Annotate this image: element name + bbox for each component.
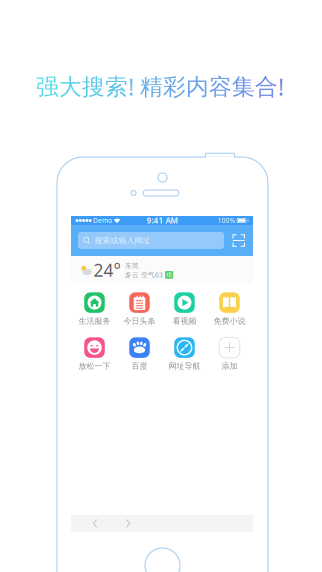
button[interactable]: 百度 — [117, 335, 162, 373]
staticText: 24° — [93, 258, 120, 281]
staticText: 集 — [232, 73, 255, 101]
staticText: ! — [128, 72, 134, 102]
staticText: 内 — [186, 73, 209, 101]
staticText: 生活服务 — [78, 316, 110, 326]
staticText: 东莞 — [125, 262, 139, 270]
staticText: 百度 — [131, 361, 147, 371]
staticText: 添加 — [221, 361, 237, 371]
staticText: Demo — [93, 216, 112, 225]
staticText: ! — [278, 72, 284, 102]
button[interactable]: Back — [79, 515, 112, 531]
button[interactable]: 今日头条 — [117, 290, 162, 328]
button[interactable]: 放松一下 — [72, 335, 117, 373]
staticText: 容 — [209, 73, 232, 101]
button[interactable]: 免费小说 — [207, 290, 252, 328]
staticText: 多云 空气63 — [125, 270, 163, 279]
button[interactable]: 24° — [71, 256, 253, 284]
button[interactable]: 搜索或输入网址 — [78, 232, 224, 249]
staticText: 强 — [36, 73, 59, 101]
staticText: 彩 — [163, 73, 186, 101]
staticText: 索 — [105, 73, 128, 101]
button[interactable]: 添加 — [207, 335, 252, 373]
button[interactable]: 生活服务 — [72, 290, 117, 328]
button[interactable]: Forward — [112, 515, 145, 531]
staticText: 今日头条 — [123, 316, 155, 326]
staticText: 大 — [59, 73, 82, 101]
staticText: 合 — [255, 73, 278, 101]
staticText: 搜索或输入网址 — [94, 236, 150, 245]
staticText: 精 — [140, 73, 163, 101]
staticText: 优 — [167, 272, 172, 278]
staticText: 搜 — [82, 73, 105, 101]
staticText: 免费小说 — [213, 316, 245, 326]
button[interactable]: 看视频 — [162, 290, 207, 328]
staticText: 网址导航 — [168, 361, 200, 371]
button[interactable]: Scan — [229, 231, 248, 250]
staticText: 看视频 — [172, 316, 196, 326]
staticText: 100% — [217, 216, 235, 225]
staticText: 放松一下 — [78, 361, 110, 371]
staticText: 9:41 AM — [146, 215, 177, 226]
button[interactable]: 网址导航 — [162, 335, 207, 373]
